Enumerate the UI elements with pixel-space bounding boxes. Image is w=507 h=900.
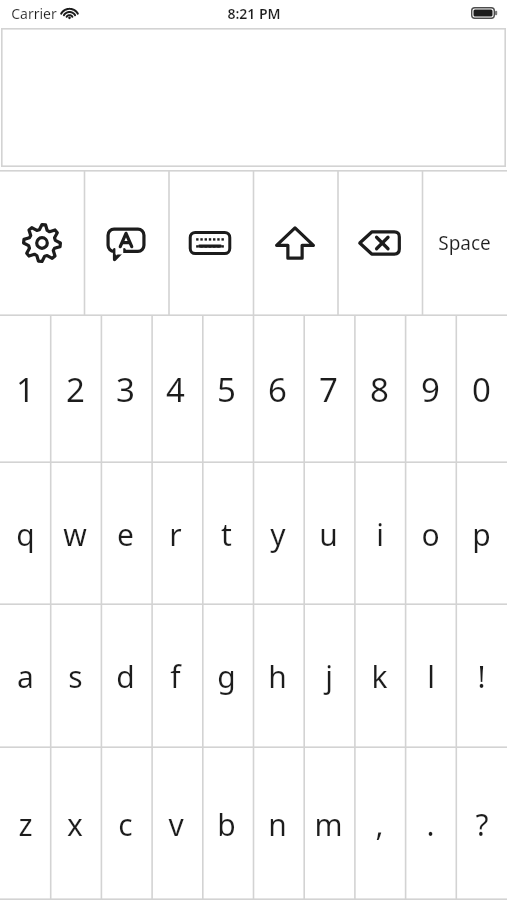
button[interactable]: 6 <box>252 316 303 463</box>
button[interactable]: m <box>303 748 354 900</box>
button[interactable]: 7 <box>303 316 354 463</box>
button[interactable]: 8 <box>354 316 405 463</box>
button[interactable]: 4 <box>150 316 201 463</box>
staticText: 6 <box>268 367 287 412</box>
staticText: b <box>217 804 236 845</box>
staticText: z <box>18 804 33 845</box>
button[interactable]: t <box>201 463 252 605</box>
staticText: t <box>221 514 232 555</box>
button[interactable]: p <box>456 463 507 605</box>
staticText: w <box>63 514 87 555</box>
button[interactable]: Autocorrect <box>84 170 168 316</box>
button[interactable]: Settings <box>0 170 84 316</box>
button[interactable]: w <box>50 463 100 605</box>
button[interactable]: Shift <box>252 170 337 316</box>
button[interactable]: 3 <box>100 316 150 463</box>
staticText: i <box>376 514 384 555</box>
button[interactable]: l <box>405 605 456 748</box>
button[interactable]: , <box>354 748 405 900</box>
button[interactable]: 2 <box>50 316 100 463</box>
staticText: ? <box>475 804 489 845</box>
button[interactable]: d <box>100 605 150 748</box>
button[interactable]: v <box>150 748 201 900</box>
staticText: Space <box>438 230 491 256</box>
staticText: q <box>16 514 35 555</box>
staticText: g <box>217 656 236 697</box>
staticText: n <box>268 804 287 845</box>
button[interactable]: . <box>405 748 456 900</box>
staticText: 1 <box>16 367 35 412</box>
staticText: p <box>472 514 491 555</box>
staticText: 8:21 PM <box>227 4 281 23</box>
staticText: e <box>117 514 134 555</box>
staticText: 3 <box>116 367 135 412</box>
staticText: s <box>68 656 83 697</box>
button[interactable]: 0 <box>456 316 507 463</box>
button[interactable]: j <box>303 605 354 748</box>
staticText: l <box>427 656 435 697</box>
button[interactable]: k <box>354 605 405 748</box>
staticText: j <box>325 656 333 697</box>
staticText: h <box>268 656 287 697</box>
button[interactable] <box>1 28 506 167</box>
button[interactable]: z <box>0 748 50 900</box>
staticText: r <box>169 514 182 555</box>
button[interactable]: e <box>100 463 150 605</box>
button[interactable]: Backspace <box>337 170 422 316</box>
staticText: y <box>270 514 286 555</box>
button[interactable]: u <box>303 463 354 605</box>
button[interactable]: h <box>252 605 303 748</box>
button[interactable]: o <box>405 463 456 605</box>
staticText: k <box>371 656 388 697</box>
button[interactable]: 9 <box>405 316 456 463</box>
button[interactable]: 5 <box>201 316 252 463</box>
button[interactable]: Keyboard layout <box>168 170 252 316</box>
staticText: d <box>116 656 135 697</box>
staticText: Carrier <box>11 4 57 23</box>
button[interactable]: a <box>0 605 50 748</box>
staticText: a <box>17 656 34 697</box>
button[interactable]: s <box>50 605 100 748</box>
staticText: 0 <box>472 367 491 412</box>
staticText: 9 <box>421 367 440 412</box>
staticText: ! <box>477 656 486 697</box>
button[interactable]: f <box>150 605 201 748</box>
staticText: o <box>421 514 440 555</box>
staticText: c <box>118 804 133 845</box>
button[interactable]: q <box>0 463 50 605</box>
button[interactable]: ? <box>456 748 507 900</box>
staticText: v <box>168 804 184 845</box>
staticText: f <box>170 656 181 697</box>
staticText: . <box>426 804 435 845</box>
staticText: , <box>375 804 384 845</box>
button[interactable]: Space <box>422 170 507 316</box>
button[interactable]: y <box>252 463 303 605</box>
staticText: 8 <box>370 367 389 412</box>
staticText: 5 <box>217 367 236 412</box>
button[interactable]: g <box>201 605 252 748</box>
button[interactable]: 1 <box>0 316 50 463</box>
button[interactable]: r <box>150 463 201 605</box>
staticText: x <box>67 804 83 845</box>
button[interactable]: x <box>50 748 100 900</box>
staticText: 7 <box>319 367 338 412</box>
staticText: 2 <box>66 367 85 412</box>
staticText: 4 <box>166 367 185 412</box>
button[interactable]: ! <box>456 605 507 748</box>
button[interactable]: i <box>354 463 405 605</box>
staticText: m <box>314 804 343 845</box>
button[interactable]: n <box>252 748 303 900</box>
staticText: u <box>319 514 338 555</box>
button[interactable]: b <box>201 748 252 900</box>
button[interactable]: c <box>100 748 150 900</box>
